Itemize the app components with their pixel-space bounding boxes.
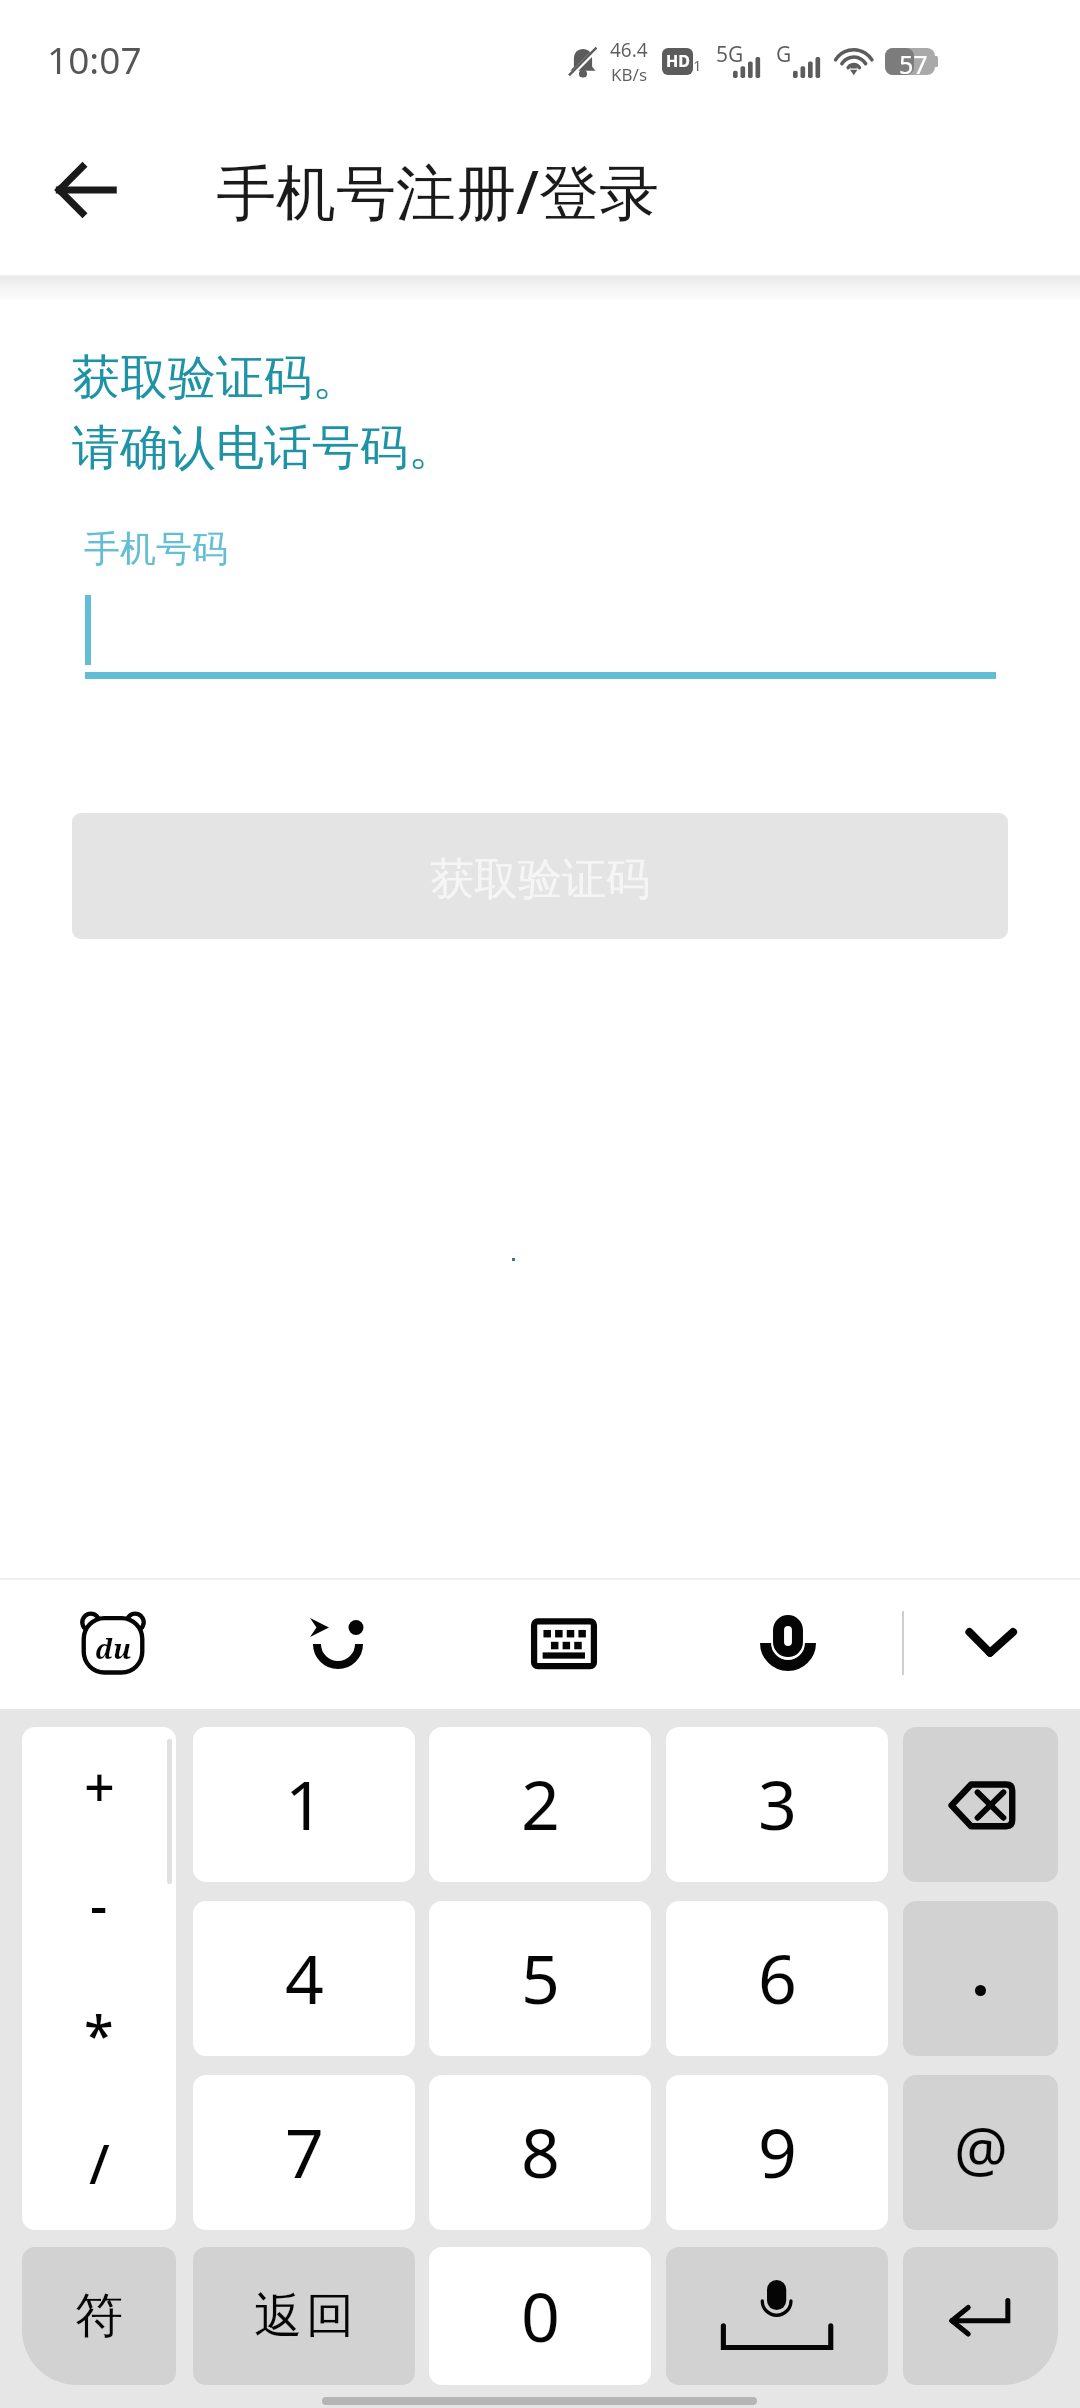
staticText: 46.4 — [610, 37, 648, 63]
staticText: 6 — [758, 1931, 797, 2024]
button[interactable]: 2 — [429, 1727, 651, 1882]
button[interactable]: 返回 — [193, 2247, 415, 2385]
staticText: @ — [954, 2107, 1008, 2189]
staticText: - — [90, 1867, 108, 1941]
button[interactable]: 0 — [429, 2247, 651, 2385]
button[interactable]: Hide keyboard — [938, 1591, 1042, 1695]
staticText: 获取验证码 — [430, 852, 650, 907]
staticText: 2 — [521, 1757, 560, 1850]
staticText: HD — [666, 50, 690, 72]
staticText: * — [84, 1997, 114, 2071]
staticText: 1 — [285, 1757, 324, 1850]
staticText: du — [95, 1630, 132, 1667]
button[interactable]: 1 — [193, 1727, 415, 1882]
button[interactable]: Keyboard layout — [512, 1591, 616, 1695]
button[interactable]: Backspace — [903, 1727, 1058, 1882]
button[interactable]: Period — [903, 1901, 1058, 2056]
staticText: KB/s — [611, 63, 648, 86]
staticText: / — [89, 2126, 110, 2200]
button[interactable]: Enter — [903, 2247, 1058, 2385]
button[interactable]: @ — [903, 2075, 1058, 2230]
button[interactable]: Voice input — [736, 1591, 840, 1695]
staticText: 返回 — [252, 2286, 356, 2346]
button[interactable]: 3 — [666, 1727, 888, 1882]
staticText: 0 — [521, 2269, 560, 2362]
staticText: 5 — [521, 1931, 560, 2024]
staticText: 10:07 — [47, 34, 142, 84]
button[interactable]: Baidu input — [61, 1591, 165, 1695]
button[interactable]: 符 — [22, 2247, 176, 2385]
staticText: 1 — [693, 55, 702, 75]
staticText: 57 — [899, 47, 928, 74]
button[interactable]: 6 — [666, 1901, 888, 2056]
staticText: 9 — [758, 2105, 797, 2198]
staticText: + — [84, 1749, 115, 1823]
staticText: 7 — [285, 2105, 324, 2198]
button[interactable]: 5 — [429, 1901, 651, 2056]
button[interactable]: Back — [32, 152, 140, 228]
staticText: G — [776, 40, 792, 69]
staticText: 8 — [521, 2105, 560, 2198]
staticText: 手机号码 — [84, 526, 228, 571]
staticText: 3 — [758, 1757, 797, 1850]
staticText: 手机号注册/登录 — [216, 150, 660, 232]
staticText: 5G — [716, 40, 744, 69]
button[interactable]: Emoji — [286, 1591, 390, 1695]
button[interactable]: 7 — [193, 2075, 415, 2230]
button[interactable]: 4 — [193, 1901, 415, 2056]
button[interactable]: + — [22, 1727, 176, 2230]
staticText: 符 — [75, 2286, 123, 2346]
staticText: 4 — [285, 1931, 324, 2024]
button[interactable]: 9 — [666, 2075, 888, 2230]
staticText: 获取验证码。 请确认电话号码。 — [72, 348, 456, 479]
button[interactable]: 8 — [429, 2075, 651, 2230]
button[interactable]: Space, voice input — [666, 2247, 888, 2385]
